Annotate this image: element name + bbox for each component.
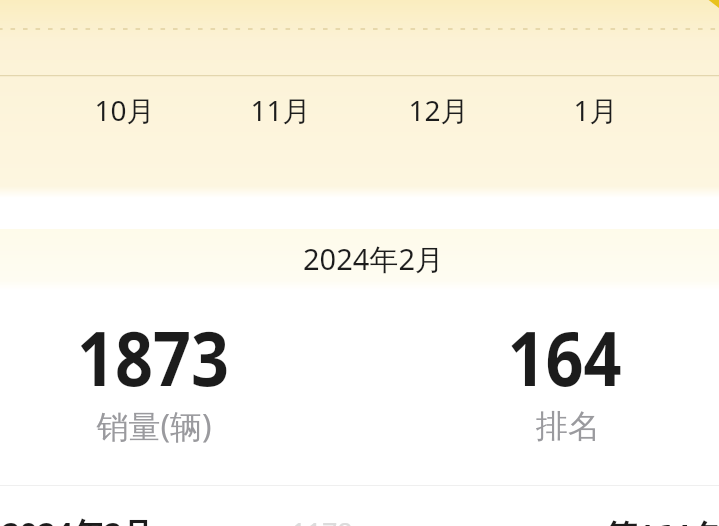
button[interactable]: 11月 (220, 91, 340, 131)
staticText: 12月 (408, 91, 469, 129)
staticText: 销量(辆) (96, 404, 212, 448)
button[interactable]: 10月 (64, 91, 184, 131)
staticText: 2024年2月 (2, 512, 153, 526)
button[interactable]: 2024年2月 (0, 486, 719, 526)
staticText: 164 (507, 305, 622, 409)
staticText: 1178 (291, 514, 353, 526)
staticText: 第164名 (606, 514, 719, 526)
staticText: 2024年2月 (303, 239, 444, 279)
button[interactable]: 12月 (378, 91, 498, 131)
staticText: 10月 (94, 91, 155, 129)
staticText: 排名 (536, 406, 600, 446)
staticText: 1873 (77, 305, 229, 409)
button[interactable]: 1月 (535, 91, 655, 131)
staticText: 1月 (573, 91, 618, 129)
staticText: 11月 (250, 91, 311, 129)
button[interactable] (0, 229, 719, 486)
